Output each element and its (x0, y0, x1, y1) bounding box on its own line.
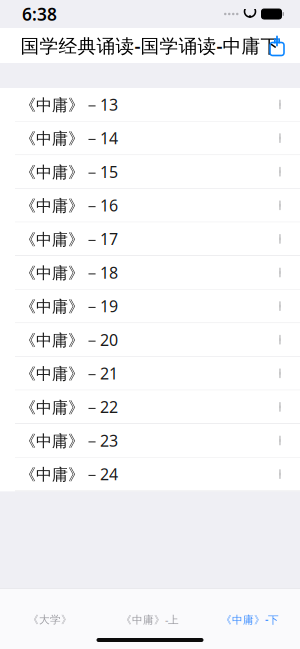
button[interactable]: 《中庸》－16 (0, 189, 300, 222)
button[interactable]: 《中庸》－19 (0, 290, 300, 323)
staticText: 国学经典诵读-国学诵读-中庸下 (20, 33, 279, 58)
button[interactable]: Share (260, 28, 294, 62)
staticText: 《中庸》－22 (20, 396, 118, 417)
staticText: 《中庸》－21 (20, 363, 118, 384)
staticText: 《中庸》－17 (20, 228, 118, 249)
staticText: 《中庸》－16 (20, 195, 118, 216)
button[interactable]: 《中庸》-上 (100, 607, 200, 633)
button[interactable]: 《中庸》-下 (200, 607, 300, 633)
staticText: 《中庸》－13 (20, 94, 118, 115)
button[interactable]: 《大学》 (0, 607, 100, 633)
staticText: 《中庸》-下 (221, 612, 279, 627)
button[interactable]: 《中庸》－18 (0, 256, 300, 290)
button[interactable]: 《中庸》－17 (0, 222, 300, 256)
staticText: 《大学》 (28, 613, 72, 626)
staticText: 《中庸》－15 (20, 161, 118, 182)
staticText: 《中庸》－19 (20, 295, 118, 317)
button[interactable]: 《中庸》－22 (0, 390, 300, 424)
staticText: 6:38 (22, 2, 57, 25)
staticText: 《中庸》－14 (20, 127, 118, 149)
button[interactable]: 《中庸》－15 (0, 155, 300, 189)
staticText: 《中庸》-上 (121, 612, 179, 627)
staticText: 《中庸》－23 (20, 430, 118, 451)
button[interactable]: 《中庸》－14 (0, 122, 300, 155)
button[interactable]: 《中庸》－21 (0, 357, 300, 390)
button[interactable]: 《中庸》－23 (0, 424, 300, 458)
button[interactable]: 《中庸》－24 (0, 458, 300, 491)
staticText: 《中庸》－24 (20, 463, 118, 485)
staticText: 《中庸》－18 (20, 262, 118, 283)
button[interactable]: 《中庸》－13 (0, 88, 300, 122)
staticText: 《中庸》－20 (20, 329, 118, 350)
button[interactable]: 《中庸》－20 (0, 323, 300, 357)
